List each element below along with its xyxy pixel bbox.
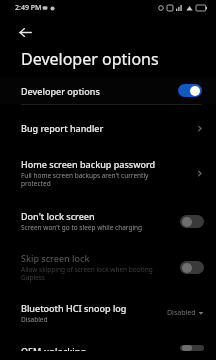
button[interactable]: Bug report handler [0, 113, 216, 143]
button[interactable]: Skip screen lock [0, 243, 216, 291]
staticText: Home screen backup password [21, 158, 156, 170]
button[interactable]: Don't lock screen [0, 201, 216, 241]
staticText: OEM unlocking [21, 345, 86, 351]
staticText: Screen won't go to sleep while charging [21, 223, 143, 232]
staticText: Bluetooth HCI snoop log [21, 302, 127, 314]
button[interactable] [180, 261, 204, 274]
staticText: Disabled [21, 315, 48, 324]
staticText: Allow skipping of screen lock when booti… [21, 265, 153, 282]
staticText: Developer options [21, 85, 178, 97]
button[interactable] [178, 84, 202, 97]
button[interactable] [180, 345, 204, 351]
button[interactable]: Home screen backup password [0, 149, 216, 197]
button[interactable] [180, 215, 204, 228]
button[interactable]: Back [10, 17, 40, 47]
staticText: Don't lock screen [21, 210, 95, 222]
staticText: Skip screen lock [21, 252, 90, 264]
button[interactable]: OEM unlocking [0, 336, 216, 360]
staticText: 2:49 PM [15, 3, 42, 13]
button[interactable]: Developer options [0, 77, 216, 104]
staticText: Developer options [21, 48, 159, 70]
staticText: Disabled [167, 308, 196, 318]
staticText: Full home screen backups aren't currentl… [21, 171, 149, 188]
button[interactable]: Bluetooth HCI snoop log [0, 293, 216, 333]
staticText: Bug report handler [21, 122, 104, 134]
